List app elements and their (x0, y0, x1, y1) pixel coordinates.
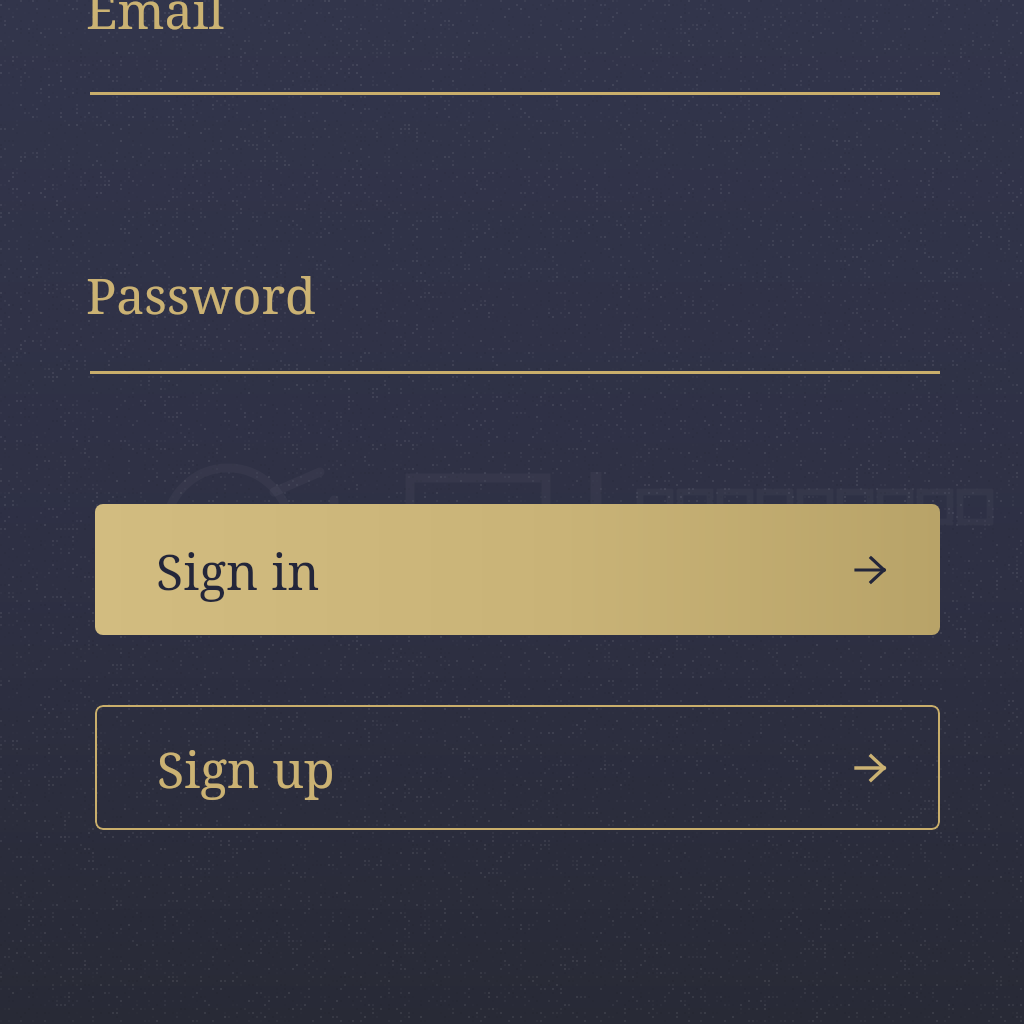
button[interactable]: Sign up (95, 705, 940, 830)
staticText: Password (86, 261, 316, 329)
staticText: Sign up (157, 735, 335, 803)
staticText: Sign in (156, 537, 320, 605)
staticText: Email (86, 0, 225, 44)
button[interactable]: Sign in (95, 504, 940, 635)
